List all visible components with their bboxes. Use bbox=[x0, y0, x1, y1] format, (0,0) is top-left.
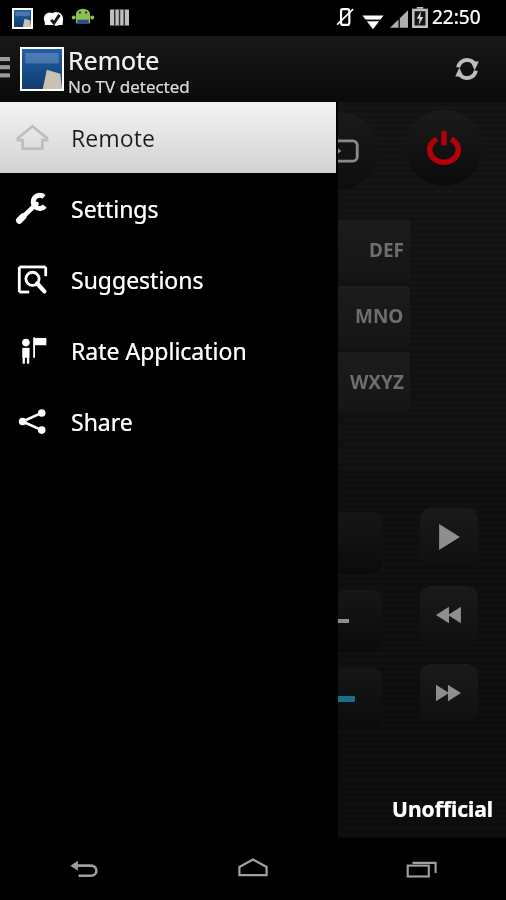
button[interactable] bbox=[290, 590, 382, 652]
button[interactable] bbox=[290, 668, 382, 730]
button[interactable]: Rate Application bbox=[0, 315, 338, 386]
button[interactable]: Power bbox=[406, 110, 482, 186]
staticText: Suggestions bbox=[71, 264, 204, 295]
staticText: Settings bbox=[71, 193, 159, 224]
staticText: No TV detected bbox=[68, 75, 190, 98]
button[interactable]: Open navigation drawer bbox=[0, 36, 64, 102]
button[interactable]: DEF bbox=[298, 220, 410, 280]
button[interactable]: Remote bbox=[0, 102, 338, 173]
staticText: Remote bbox=[68, 43, 160, 77]
staticText: MNO bbox=[355, 303, 404, 329]
button[interactable]: Suggestions bbox=[0, 244, 338, 315]
staticText: Unofficial bbox=[392, 795, 494, 824]
staticText: Remote bbox=[71, 122, 155, 153]
button[interactable]: Settings bbox=[0, 173, 338, 244]
button[interactable]: Fast forward bbox=[420, 664, 478, 722]
button[interactable]: Recents bbox=[337, 838, 506, 900]
staticText: DEF bbox=[369, 237, 404, 263]
button[interactable]: Refresh bbox=[438, 36, 496, 102]
staticText: 22:50 bbox=[432, 4, 481, 30]
button[interactable]: Home bbox=[168, 838, 337, 900]
button[interactable]: Rewind bbox=[420, 586, 478, 644]
button[interactable] bbox=[290, 512, 382, 574]
staticText: WXYZ bbox=[350, 369, 404, 395]
button[interactable]: Back bbox=[0, 838, 168, 900]
staticText: Share bbox=[71, 406, 133, 437]
button[interactable]: Input source bbox=[300, 112, 378, 190]
button[interactable]: Play bbox=[420, 508, 478, 566]
button[interactable]: Share bbox=[0, 386, 338, 457]
staticText: Rate Application bbox=[71, 335, 247, 366]
button[interactable]: MNO bbox=[298, 286, 410, 346]
button[interactable]: WXYZ bbox=[298, 352, 410, 412]
